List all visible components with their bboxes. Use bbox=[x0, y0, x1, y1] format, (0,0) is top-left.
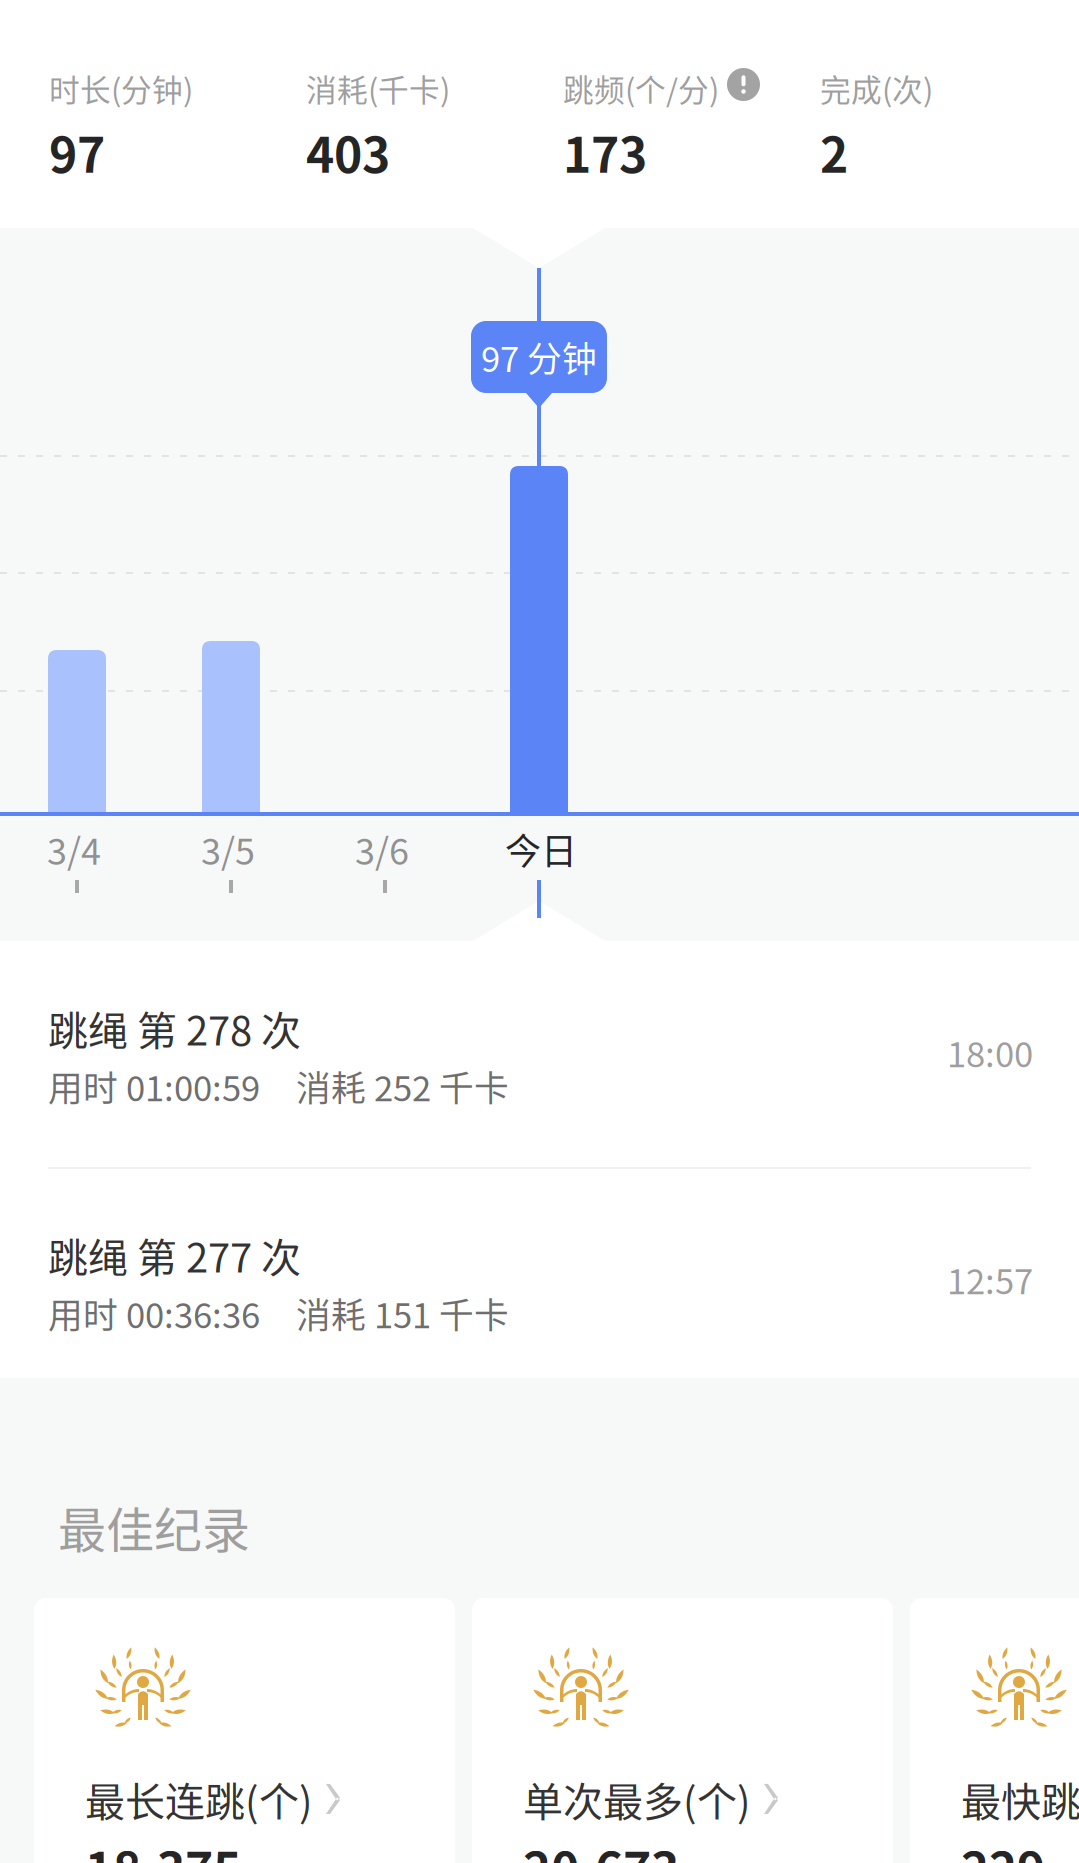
staticText: 消耗 252 千卡 bbox=[296, 1061, 509, 1111]
staticText: 跳绳 第 278 次 bbox=[48, 999, 301, 1057]
staticText: 18:00 bbox=[947, 1027, 1033, 1077]
staticText: 完成(次) bbox=[820, 66, 933, 110]
button[interactable]: 跳绳 第 278 次 bbox=[0, 941, 1079, 1159]
staticText: 20,673 bbox=[523, 1832, 679, 1863]
staticText: 3/4 bbox=[47, 823, 101, 875]
staticText: 3/5 bbox=[201, 823, 255, 875]
staticText: 跳频(个/分) bbox=[563, 66, 719, 110]
staticText: 今日 bbox=[505, 823, 577, 875]
button[interactable]: 单次最多(个) bbox=[472, 1598, 893, 1863]
staticText: 18,375 bbox=[85, 1832, 241, 1863]
staticText: 用时 00:36:36 bbox=[48, 1288, 260, 1338]
staticText: 最长连跳(个) bbox=[85, 1770, 313, 1828]
staticText: 2 bbox=[820, 117, 848, 186]
staticText: 单次最多(个) bbox=[523, 1770, 751, 1828]
staticText: 173 bbox=[563, 117, 647, 186]
staticText: 时长(分钟) bbox=[49, 66, 193, 110]
staticText: 消耗 151 千卡 bbox=[296, 1288, 509, 1338]
staticText: 用时 01:00:59 bbox=[48, 1061, 260, 1111]
staticText: 消耗(千卡) bbox=[306, 66, 450, 110]
staticText: 97 分钟 bbox=[481, 332, 597, 382]
staticText: 跳绳 第 277 次 bbox=[48, 1226, 301, 1284]
staticText: 3/6 bbox=[355, 823, 409, 875]
staticText: 97 bbox=[49, 117, 105, 186]
button[interactable]: 最快跳速(个) bbox=[910, 1598, 1079, 1863]
button[interactable]: 最长连跳(个) bbox=[34, 1598, 455, 1863]
staticText: 229 bbox=[961, 1832, 1045, 1863]
staticText: 12:57 bbox=[947, 1254, 1033, 1304]
button[interactable]: 跳绳 第 277 次 bbox=[0, 1168, 1079, 1386]
staticText: 403 bbox=[306, 117, 390, 186]
staticText: 最快跳速(个) bbox=[961, 1770, 1079, 1828]
staticText: 最佳纪录 bbox=[58, 1492, 250, 1561]
